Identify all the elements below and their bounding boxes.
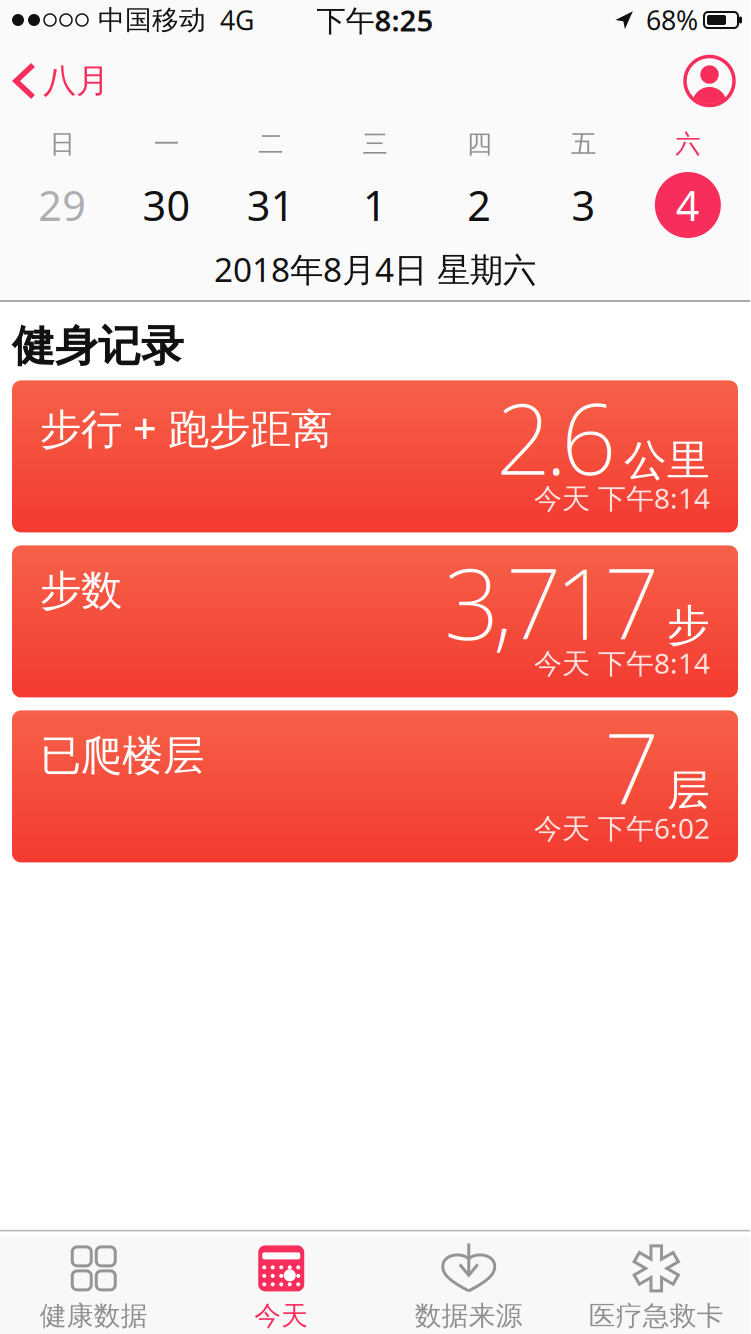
staticText: 步数 (40, 565, 122, 616)
staticText: 数据来源 (415, 1299, 523, 1332)
staticText: 7 (604, 702, 659, 832)
staticText: 中国移动 (98, 4, 206, 36)
staticText: 2 (467, 178, 491, 232)
button[interactable]: 2 (427, 166, 531, 244)
staticText: 68% (646, 2, 698, 38)
button[interactable]: 29 (10, 166, 114, 244)
staticText: 步行 + 跑步距离 (40, 400, 332, 455)
staticText: 今天 (254, 1299, 308, 1332)
staticText: 八月 (43, 60, 109, 101)
staticText: 3,717 (444, 537, 659, 667)
staticText: 三 (362, 128, 387, 159)
staticText: 健身记录 (12, 320, 184, 372)
button[interactable]: 1 (323, 166, 427, 244)
staticText: 4 (676, 178, 700, 232)
button[interactable]: 30 (114, 166, 219, 244)
staticText: 六 (675, 128, 700, 159)
staticText: 今天 下午6:02 (534, 809, 710, 846)
staticText: 已爬楼层 (40, 730, 204, 781)
staticText: 健康数据 (40, 1299, 148, 1332)
button[interactable]: 3 (531, 166, 636, 244)
button[interactable]: 医疗急救卡 (562, 1231, 750, 1332)
button[interactable]: 今天 (187, 1231, 375, 1332)
staticText: 层 (667, 764, 710, 817)
staticText: 1 (363, 178, 387, 232)
staticText: 2.6 (496, 372, 616, 502)
button[interactable]: 31 (219, 166, 323, 244)
staticText: 29 (38, 178, 86, 232)
button[interactable]: 步数 (12, 545, 738, 697)
button[interactable]: 4 (636, 166, 740, 244)
staticText: 今天 下午8:14 (534, 644, 710, 681)
staticText: 下午8:25 (316, 0, 433, 39)
button[interactable] (685, 56, 750, 105)
button[interactable]: 步行 + 跑步距离 (12, 380, 738, 532)
button[interactable]: 数据来源 (375, 1231, 562, 1332)
staticText: 二 (258, 128, 283, 159)
staticText: 一 (154, 128, 179, 159)
button[interactable]: 已爬楼层 (12, 710, 738, 862)
staticText: 2018年8月4日 星期六 (214, 247, 536, 291)
staticText: 日 (50, 128, 75, 159)
button[interactable]: 八月 (0, 60, 109, 101)
staticText: 4G (220, 2, 254, 38)
staticText: 公里 (624, 434, 710, 487)
staticText: 步 (667, 599, 710, 652)
staticText: 四 (467, 128, 492, 159)
button[interactable]: 健康数据 (0, 1231, 187, 1332)
staticText: 医疗急救卡 (589, 1299, 724, 1332)
staticText: 30 (142, 178, 190, 232)
staticText: 今天 下午8:14 (534, 479, 710, 516)
staticText: 3 (572, 178, 596, 232)
staticText: 31 (247, 178, 295, 232)
staticText: 五 (571, 128, 596, 159)
